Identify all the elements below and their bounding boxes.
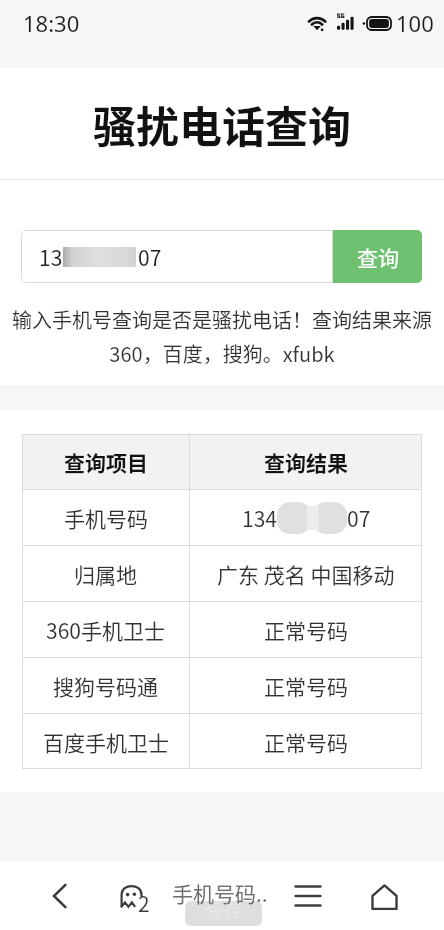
staticText: 保存 — [206, 901, 242, 921]
staticText: 手机号码.. — [172, 878, 268, 908]
button[interactable]: Menu — [276, 862, 340, 930]
staticText: 07 — [347, 503, 371, 533]
staticText: 搜狗号码通 — [53, 671, 158, 701]
staticText: 13 — [39, 242, 63, 272]
staticText: 手机号码 — [64, 503, 148, 533]
staticText: 查询结果 — [264, 447, 348, 477]
staticText: 归属地 — [74, 559, 137, 589]
staticText: 广东 茂名 中国移动 — [217, 559, 395, 589]
staticText: 查询项目 — [64, 447, 148, 477]
staticText: 18:30 — [23, 8, 80, 38]
button[interactable]: 查询 — [333, 230, 422, 283]
staticText: 100 — [396, 8, 434, 38]
button[interactable]: 手机号码.. — [168, 862, 272, 930]
button[interactable]: Tabs, 2 open — [104, 862, 166, 930]
staticText: 百度手机卫士 — [43, 727, 169, 757]
staticText: 134 — [242, 503, 277, 533]
staticText: 正常号码 — [264, 727, 348, 757]
staticText: 正常号码 — [264, 615, 348, 645]
staticText: 360手机卫士 — [46, 615, 165, 645]
staticText: 2 — [138, 888, 150, 916]
staticText: 查询 — [357, 242, 399, 272]
button[interactable]: 13 — [21, 230, 333, 283]
staticText: 正常号码 — [264, 671, 348, 701]
button[interactable]: Back — [20, 862, 100, 930]
staticText: 骚扰电话查询 — [93, 93, 351, 155]
staticText: 07 — [138, 242, 162, 272]
button[interactable]: Home — [350, 862, 418, 930]
staticText: 输入手机号查询是否是骚扰电话！查询结果来源 360，百度，搜狗。xfubk — [0, 305, 444, 368]
